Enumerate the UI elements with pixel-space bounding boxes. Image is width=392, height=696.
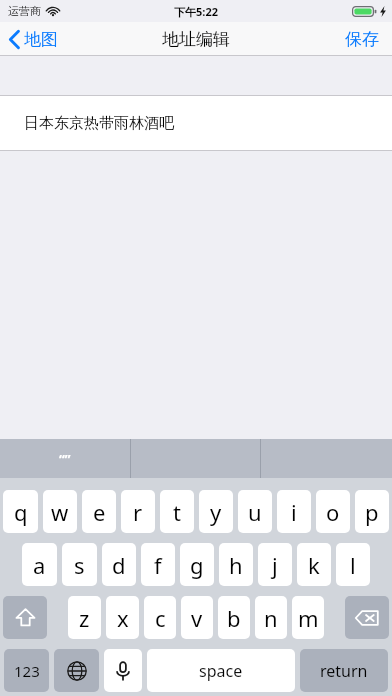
button[interactable]: l [336, 543, 370, 586]
staticText: n [264, 603, 278, 633]
staticText: return [320, 660, 368, 682]
button[interactable]: j [258, 543, 292, 586]
button[interactable]: return [300, 649, 388, 692]
staticText: j [272, 550, 278, 580]
button[interactable]: 保存 [332, 24, 392, 55]
staticText: i [291, 497, 297, 527]
button[interactable]: space [147, 649, 295, 692]
staticText: a [33, 550, 46, 580]
staticText: 123 [14, 661, 40, 681]
button[interactable]: s [62, 543, 97, 586]
button[interactable]: Change keyboard [54, 649, 99, 692]
button[interactable]: Shift [3, 596, 47, 639]
button[interactable]: h [219, 543, 253, 586]
staticText: p [365, 497, 379, 527]
staticText: k [308, 550, 320, 580]
staticText: 运营商 [8, 4, 41, 18]
button[interactable]: e [82, 490, 116, 533]
staticText: w [51, 497, 69, 527]
button[interactable]: g [180, 543, 214, 586]
button[interactable]: b [218, 596, 250, 639]
staticText: g [190, 550, 204, 580]
staticText: 下午5:22 [174, 4, 218, 19]
button[interactable]: w [43, 490, 77, 533]
staticText: y [210, 497, 222, 527]
staticText: e [93, 497, 106, 527]
staticText: z [79, 603, 90, 633]
staticText: 地图 [24, 29, 58, 50]
button[interactable]: c [144, 596, 176, 639]
button[interactable]: d [102, 543, 136, 586]
button[interactable]: 123 [4, 649, 49, 692]
staticText: 日本东京热带雨林酒吧 [24, 114, 174, 133]
staticText: c [155, 603, 166, 633]
staticText: “” [59, 450, 71, 468]
button[interactable]: u [238, 490, 272, 533]
button[interactable]: 地图 [0, 24, 66, 55]
staticText: u [248, 497, 262, 527]
staticText: r [133, 497, 143, 527]
button[interactable]: 日本东京热带雨林酒吧 [0, 96, 392, 150]
staticText: h [229, 550, 243, 580]
staticText: d [112, 550, 126, 580]
button[interactable]: v [181, 596, 213, 639]
staticText: x [117, 603, 129, 633]
button[interactable]: Backspace [345, 596, 389, 639]
button[interactable]: x [106, 596, 139, 639]
button[interactable]: k [297, 543, 331, 586]
button[interactable]: r [121, 490, 155, 533]
staticText: b [227, 603, 241, 633]
button[interactable]: t [160, 490, 194, 533]
staticText: q [14, 497, 28, 527]
button[interactable]: q [3, 490, 38, 533]
button[interactable]: “” [0, 439, 130, 478]
staticText: 保存 [345, 29, 379, 50]
staticText: m [298, 603, 319, 633]
staticText: t [173, 497, 181, 527]
staticText: f [154, 550, 162, 580]
button[interactable]: a [22, 543, 57, 586]
button[interactable]: i [277, 490, 311, 533]
button[interactable]: z [68, 596, 101, 639]
staticText: s [74, 550, 85, 580]
button[interactable]: o [316, 490, 350, 533]
button[interactable]: Dictation [104, 649, 142, 692]
staticText: o [326, 497, 340, 527]
staticText: 地址编辑 [162, 29, 230, 50]
button[interactable]: n [255, 596, 287, 639]
button[interactable]: f [141, 543, 175, 586]
button[interactable]: m [292, 596, 324, 639]
staticText: l [350, 550, 356, 580]
staticText: space [199, 660, 243, 682]
staticText: v [191, 603, 203, 633]
button[interactable]: y [199, 490, 233, 533]
button[interactable]: p [355, 490, 389, 533]
